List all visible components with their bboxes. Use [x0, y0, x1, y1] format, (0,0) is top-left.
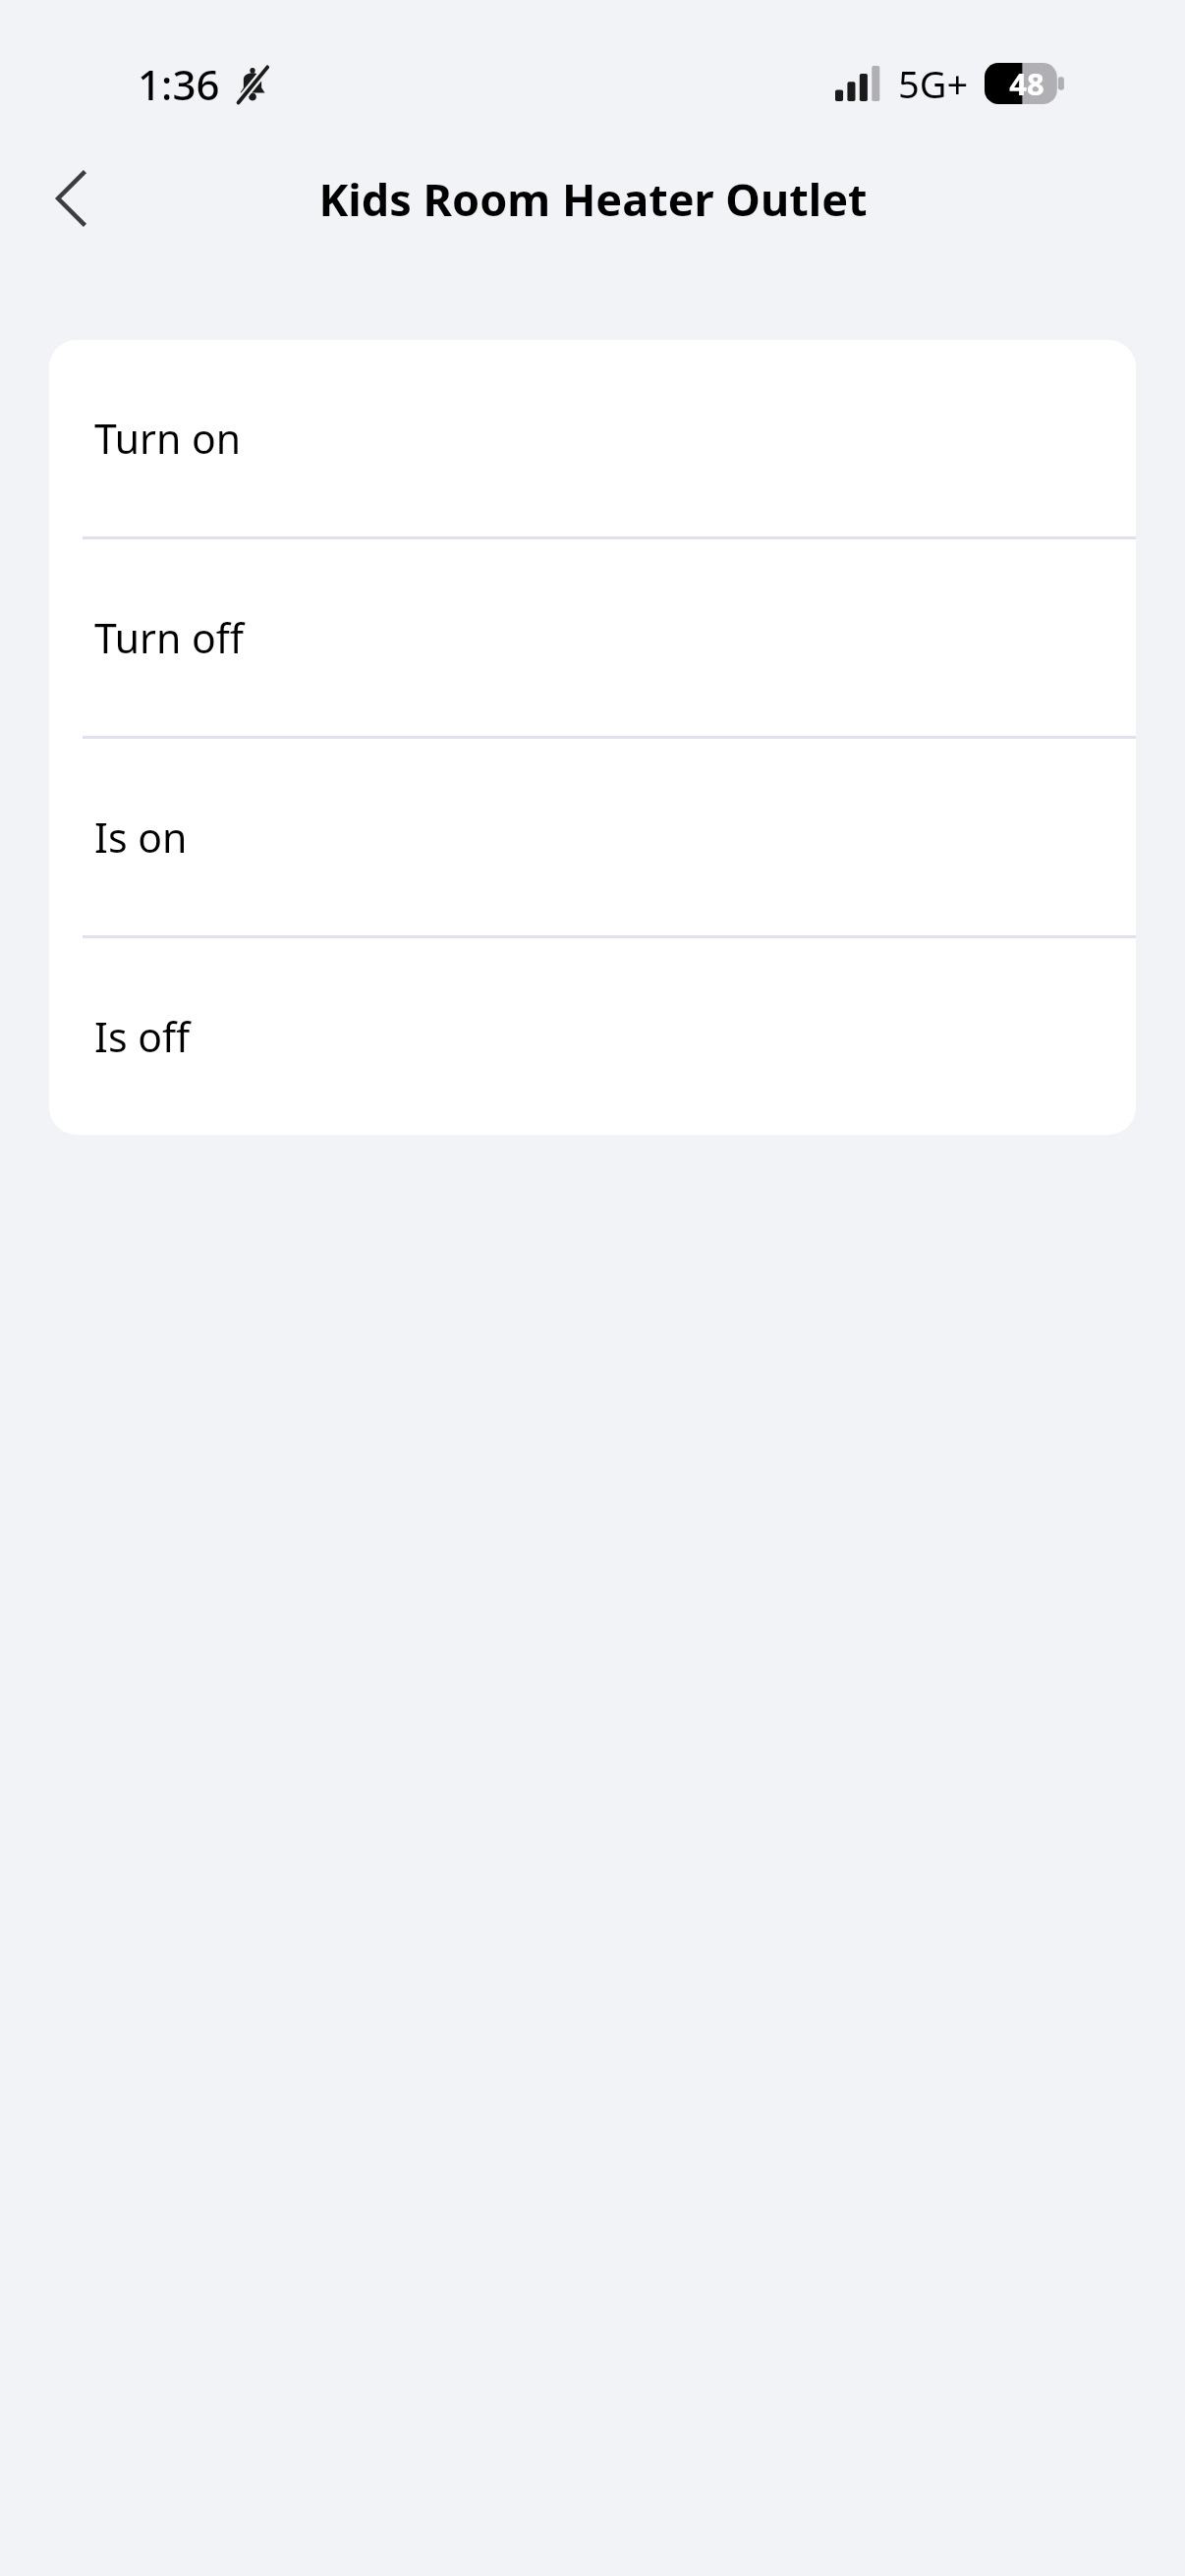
- button[interactable]: Is on: [49, 739, 1136, 935]
- staticText: 5G+: [898, 58, 969, 109]
- button[interactable]: Back: [24, 151, 118, 246]
- staticText: Is on: [94, 810, 188, 865]
- staticText: 48: [1009, 63, 1044, 104]
- button[interactable]: Turn on: [49, 340, 1136, 536]
- staticText: Kids Room Heater Outlet: [318, 169, 868, 229]
- staticText: Turn off: [94, 610, 245, 665]
- button[interactable]: Turn off: [49, 539, 1136, 736]
- staticText: Turn on: [94, 411, 242, 466]
- staticText: Is off: [94, 1009, 191, 1064]
- staticText: 1:36: [138, 56, 220, 112]
- button[interactable]: Is off: [49, 938, 1136, 1135]
